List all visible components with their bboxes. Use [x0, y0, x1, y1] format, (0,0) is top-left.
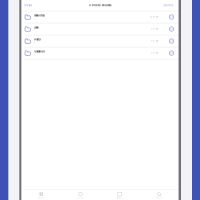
staticText: 9:41 AM: [150, 40, 158, 42]
button[interactable]: For You: [61, 192, 100, 199]
staticText: Vacation: [34, 50, 45, 53]
button[interactable]: Library: [22, 192, 61, 199]
staticText: 1: [34, 30, 35, 32]
staticText: Delete: [163, 4, 173, 7]
staticText: 1: [34, 18, 35, 20]
button[interactable]: Party: [22, 35, 179, 47]
staticText: Create: [24, 4, 33, 7]
staticText: Albums: [117, 197, 123, 199]
button[interactable]: Create: [24, 4, 33, 7]
button[interactable]: Favorites: [22, 11, 179, 23]
button[interactable]: Vacation: [22, 47, 179, 59]
staticText: Library: [38, 197, 44, 199]
staticText: 4 Photo Folders: [89, 4, 111, 7]
staticText: 10:30 AM: [149, 16, 158, 18]
staticText: Party: [34, 38, 40, 41]
staticText: 1: [34, 54, 35, 56]
staticText: Favorites: [34, 14, 44, 17]
button[interactable]: Delete: [163, 4, 173, 7]
button[interactable]: Love: [22, 23, 179, 35]
staticText: For You: [77, 197, 83, 199]
button[interactable]: Search: [139, 192, 178, 199]
staticText: 1: [34, 42, 35, 44]
staticText: 9:41 AM: [150, 52, 158, 54]
staticText: Love: [34, 26, 38, 29]
button[interactable]: Albums: [100, 192, 139, 199]
staticText: 9:41 AM: [150, 28, 158, 30]
